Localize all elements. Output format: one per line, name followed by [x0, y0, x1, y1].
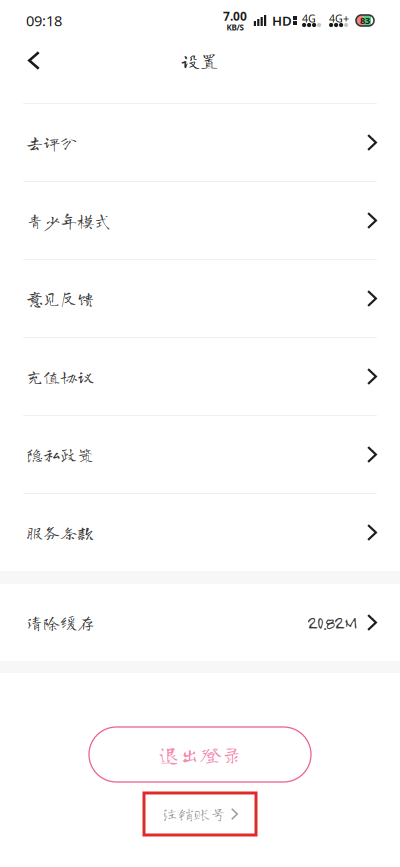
button[interactable]: 注销账号 [144, 793, 256, 835]
staticText: 7.00 [223, 8, 247, 24]
staticText: 83 [360, 14, 370, 27]
staticText: 去评分 [26, 134, 77, 151]
button[interactable]: 充值协议 [0, 338, 400, 415]
staticText: 20.82M [307, 612, 356, 633]
button[interactable]: 清除缓存 [0, 584, 400, 661]
staticText: HD [272, 12, 292, 29]
button[interactable]: Back [6, 34, 62, 86]
button[interactable]: 服务条款 [0, 494, 400, 571]
staticText: 注销账号 [162, 806, 226, 822]
staticText: 服务条款 [26, 524, 94, 541]
staticText: 4G+ [329, 11, 349, 25]
button[interactable]: 隐私政策 [0, 416, 400, 493]
staticText: 退出登录 [158, 744, 242, 765]
staticText: 隐私政策 [26, 446, 94, 463]
button[interactable]: 意见反馈 [0, 260, 400, 337]
staticText: 青少年模式 [26, 212, 111, 229]
staticText: 充值协议 [26, 368, 94, 385]
staticText: KB/S [226, 22, 243, 33]
staticText: 清除缓存 [26, 614, 94, 631]
button[interactable]: 青少年模式 [0, 182, 400, 259]
staticText: 09:18 [26, 11, 62, 30]
staticText: 4G [302, 11, 316, 25]
staticText: 设置 [181, 51, 219, 70]
staticText: 意见反馈 [26, 290, 94, 307]
button[interactable]: 退出登录 [89, 727, 311, 782]
button[interactable]: 去评分 [0, 104, 400, 181]
